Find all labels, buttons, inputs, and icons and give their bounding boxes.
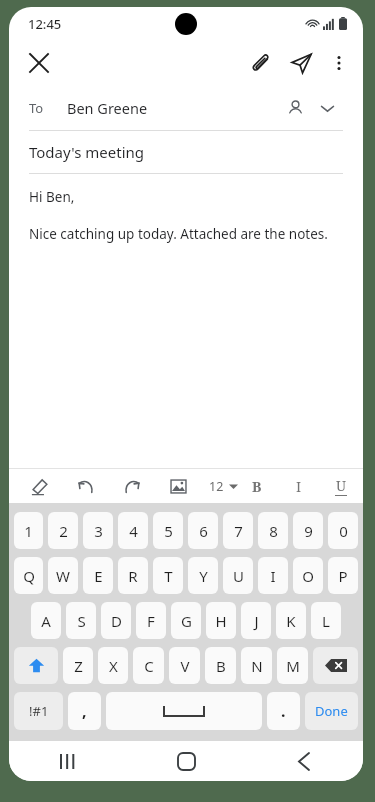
button[interactable]: 1 (14, 512, 43, 549)
staticText: 1 (24, 521, 33, 541)
staticText: Z (74, 656, 83, 676)
button[interactable]: 12 (205, 474, 242, 499)
staticText: To (29, 99, 44, 117)
button[interactable]: More options (321, 45, 357, 81)
staticText: Today's meeting (29, 142, 144, 162)
staticText: Done (315, 702, 348, 720)
button[interactable]: Today's meeting (9, 131, 363, 173)
staticText: G (181, 611, 192, 631)
staticText: 8 (269, 521, 278, 541)
button[interactable]: U (223, 557, 253, 594)
button[interactable]: M (277, 647, 308, 684)
staticText: K (286, 611, 296, 631)
staticText: A (41, 611, 51, 631)
staticText: U (233, 566, 244, 586)
button[interactable]: P (328, 557, 358, 594)
staticText: I (270, 566, 276, 586)
staticText: 6 (199, 521, 208, 541)
button[interactable]: 4 (118, 512, 148, 549)
button[interactable]: H (206, 602, 236, 639)
staticText: B (216, 656, 226, 676)
button[interactable]: Insert image (165, 473, 191, 499)
staticText: W (56, 566, 70, 586)
button[interactable]: . (267, 692, 300, 730)
button[interactable]: Redo (119, 473, 145, 499)
button[interactable]: 3 (83, 512, 113, 549)
staticText: I (296, 477, 302, 496)
staticText: M (286, 656, 300, 676)
staticText: X (109, 656, 118, 676)
staticText: 4 (129, 521, 138, 541)
button[interactable]: C (133, 647, 164, 684)
button[interactable]: 7 (223, 512, 253, 549)
button[interactable]: I (284, 471, 314, 501)
staticText: Nice catching up today. Attached are the… (29, 225, 328, 243)
button[interactable]: D (101, 602, 131, 639)
staticText: 12:45 (28, 15, 62, 33)
staticText: 7 (234, 521, 243, 541)
button[interactable]: Y (188, 557, 218, 594)
staticText: R (128, 566, 138, 586)
staticText: H (215, 611, 227, 631)
button[interactable]: Pen (27, 473, 53, 499)
staticText: Y (199, 566, 208, 586)
staticText: T (164, 566, 173, 586)
staticText: F (147, 611, 155, 631)
button[interactable]: Send (281, 43, 321, 83)
button[interactable]: O (293, 557, 323, 594)
button[interactable]: Close (19, 43, 59, 83)
button[interactable]: F (136, 602, 166, 639)
button[interactable]: S (66, 602, 96, 639)
button[interactable]: Back (245, 741, 363, 781)
staticText: S (77, 611, 86, 631)
button[interactable]: B (205, 647, 236, 684)
staticText: 5 (164, 521, 173, 541)
button[interactable]: T (153, 557, 183, 594)
staticText: , (82, 700, 87, 722)
button[interactable]: Backspace (313, 647, 358, 684)
staticText: 9 (304, 521, 313, 541)
staticText: Q (23, 566, 35, 586)
staticText: 3 (94, 521, 103, 541)
button[interactable]: L (311, 602, 341, 639)
button[interactable]: 6 (188, 512, 218, 549)
staticText: E (94, 566, 103, 586)
button[interactable]: V (169, 647, 200, 684)
button[interactable]: Contacts (279, 92, 311, 124)
button[interactable]: 9 (293, 512, 323, 549)
button[interactable]: Recent apps (9, 741, 127, 781)
staticText: L (322, 611, 330, 631)
button[interactable]: , (68, 692, 101, 730)
button[interactable]: !#1 (14, 692, 63, 730)
button[interactable]: 2 (48, 512, 78, 549)
button[interactable]: Q (14, 557, 43, 594)
button[interactable]: J (241, 602, 271, 639)
staticText: C (144, 656, 154, 676)
button[interactable]: W (48, 557, 78, 594)
button[interactable]: B (242, 471, 272, 501)
button[interactable]: I (258, 557, 288, 594)
button[interactable]: Z (63, 647, 93, 684)
button[interactable]: R (118, 557, 148, 594)
button[interactable]: Undo (73, 473, 99, 499)
button[interactable]: Hi Ben, (9, 174, 363, 468)
button[interactable]: K (276, 602, 306, 639)
button[interactable]: To (9, 85, 363, 130)
button[interactable]: A (31, 602, 61, 639)
button[interactable]: X (98, 647, 128, 684)
button[interactable]: U (326, 471, 356, 501)
button[interactable]: 0 (328, 512, 358, 549)
button[interactable]: Attach (241, 43, 281, 83)
button[interactable]: N (241, 647, 272, 684)
button[interactable]: Shift (14, 647, 58, 684)
button[interactable]: Expand recipients (311, 92, 343, 124)
button[interactable]: E (83, 557, 113, 594)
button[interactable]: 8 (258, 512, 288, 549)
staticText: B (252, 477, 262, 496)
button[interactable]: Home (127, 741, 245, 781)
button[interactable]: 5 (153, 512, 183, 549)
button[interactable]: G (171, 602, 201, 639)
button[interactable]: Done (305, 692, 358, 730)
button[interactable]: Space (106, 692, 262, 730)
staticText: . (281, 700, 286, 722)
